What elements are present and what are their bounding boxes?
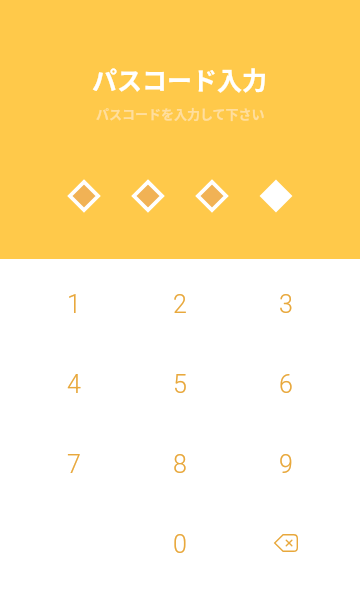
staticText: 1 — [67, 290, 81, 319]
button[interactable]: 1 — [21, 264, 127, 344]
staticText: 4 — [67, 370, 81, 399]
button[interactable]: 0 — [127, 504, 233, 584]
button[interactable]: 8 — [127, 424, 233, 504]
staticText: 3 — [279, 290, 293, 319]
staticText: 9 — [279, 450, 293, 479]
staticText: パスコード入力 — [92, 61, 268, 97]
button[interactable]: Backspace — [233, 504, 339, 584]
button[interactable]: 2 — [127, 264, 233, 344]
staticText: 2 — [173, 290, 187, 319]
button[interactable]: 3 — [233, 264, 339, 344]
staticText: 0 — [173, 530, 187, 559]
button[interactable]: 4 — [21, 344, 127, 424]
staticText: 8 — [173, 450, 187, 479]
staticText: 6 — [279, 370, 293, 399]
button[interactable]: 6 — [233, 344, 339, 424]
button[interactable]: 9 — [233, 424, 339, 504]
button[interactable]: 7 — [21, 424, 127, 504]
staticText: パスコードを入力して下さい — [96, 104, 265, 123]
staticText: 5 — [173, 370, 187, 399]
staticText: 7 — [67, 450, 81, 479]
button[interactable]: 5 — [127, 344, 233, 424]
